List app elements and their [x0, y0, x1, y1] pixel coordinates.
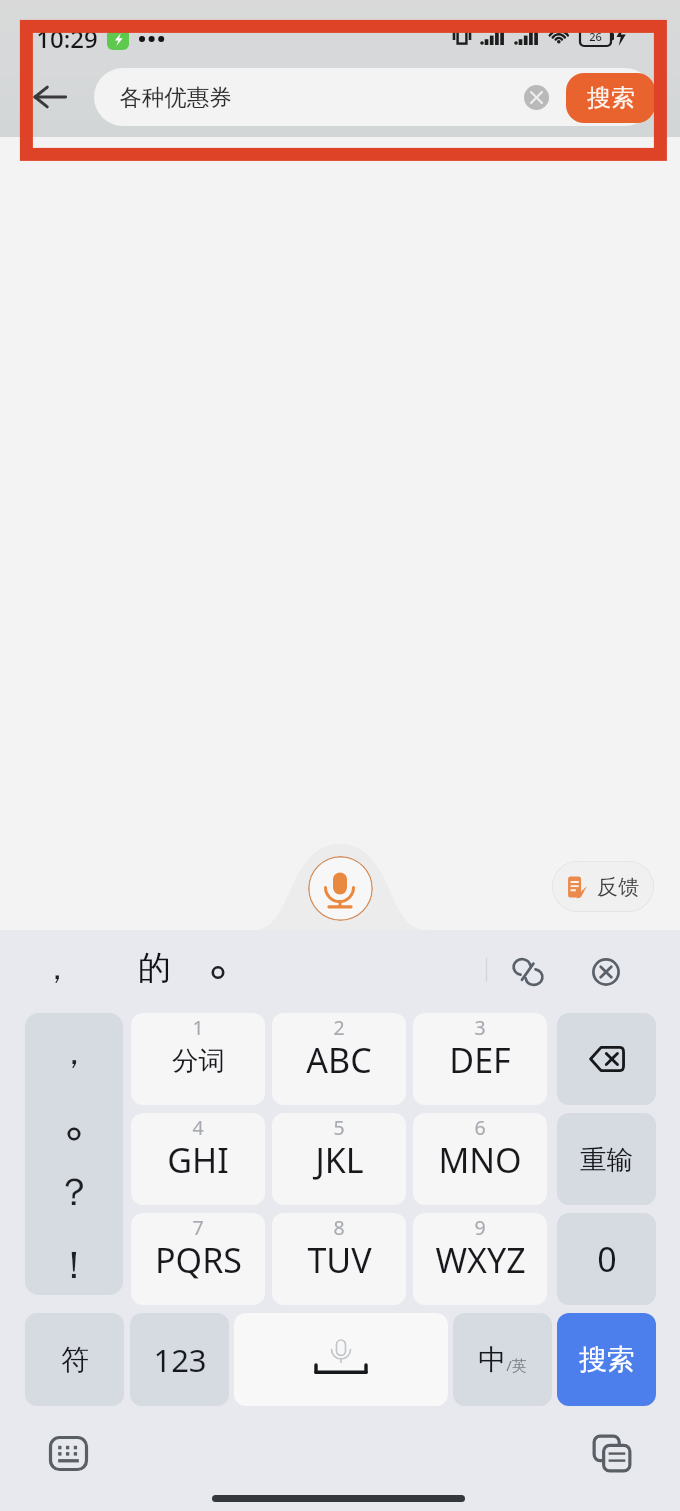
button[interactable]: 8 — [272, 1213, 406, 1305]
staticText: ， — [41, 948, 73, 988]
staticText: 8 — [333, 1214, 345, 1241]
staticText: 搜索 — [587, 83, 635, 113]
staticText: 1 — [192, 1014, 204, 1041]
staticText: 重输 — [580, 1143, 633, 1176]
button[interactable]: 3 — [413, 1013, 547, 1105]
button[interactable] — [186, 930, 250, 1012]
staticText: 的 — [138, 947, 171, 989]
button[interactable]: Back — [14, 68, 86, 126]
button[interactable]: Clear — [524, 85, 549, 110]
staticText: 123 — [153, 1339, 207, 1381]
staticText: 7 — [192, 1214, 204, 1241]
staticText: MNO — [438, 1137, 522, 1183]
button[interactable]: 重输 — [557, 1113, 656, 1205]
staticText: 2 — [333, 1014, 345, 1041]
button[interactable]: ， — [25, 1013, 123, 1295]
button[interactable]: 的 — [110, 930, 198, 1012]
button[interactable]: 符 — [25, 1313, 124, 1406]
staticText: ？ — [55, 1168, 93, 1216]
button[interactable]: 0 — [557, 1213, 656, 1305]
staticText: 反馈 — [597, 874, 639, 900]
staticText: /英 — [506, 1355, 527, 1375]
button[interactable]: 1 — [131, 1013, 265, 1105]
button[interactable]: 7 — [131, 1213, 265, 1305]
staticText: GHI — [167, 1137, 229, 1183]
button[interactable]: Backspace — [557, 1013, 656, 1105]
staticText: 各种优惠券 — [119, 83, 232, 111]
button[interactable]: 6 — [413, 1113, 547, 1205]
button[interactable]: 搜索 — [566, 73, 655, 123]
staticText: 分词 — [172, 1044, 225, 1077]
button[interactable]: ， — [12, 930, 102, 1012]
staticText: DEF — [449, 1037, 511, 1083]
staticText: 4 — [192, 1114, 204, 1141]
staticText: ！ — [55, 1241, 93, 1289]
button[interactable]: Switch keyboard — [40, 1425, 96, 1481]
button[interactable]: Edit text — [502, 946, 554, 998]
button[interactable]: 123 — [130, 1313, 229, 1406]
button[interactable]: 9 — [413, 1213, 547, 1305]
staticText: 搜索 — [579, 1342, 635, 1377]
staticText: 26 — [589, 29, 602, 44]
button[interactable]: 2 — [272, 1013, 406, 1105]
staticText: WXYZ — [435, 1237, 526, 1283]
button[interactable]: Clipboard — [584, 1425, 640, 1481]
button[interactable]: 5 — [272, 1113, 406, 1205]
staticText: JKL — [315, 1137, 364, 1183]
button[interactable]: 中 — [453, 1313, 552, 1406]
button[interactable]: 4 — [131, 1113, 265, 1205]
staticText: 9 — [474, 1214, 486, 1241]
staticText: PQRS — [155, 1237, 242, 1283]
button[interactable]: Close keyboard — [580, 946, 632, 998]
button[interactable]: 反馈 — [552, 861, 654, 912]
button[interactable]: Voice input — [308, 856, 373, 921]
staticText: 10:29 — [36, 22, 98, 55]
staticText: 中 — [478, 1342, 506, 1377]
button[interactable]: Space — [234, 1313, 448, 1406]
button[interactable]: 各种优惠券 — [94, 68, 654, 126]
staticText: 符 — [61, 1342, 89, 1377]
staticText: TUV — [307, 1237, 372, 1283]
button[interactable]: 搜索 — [557, 1313, 656, 1406]
staticText: ， — [57, 1031, 91, 1074]
staticText: 6 — [474, 1114, 486, 1141]
staticText: 5 — [333, 1114, 345, 1141]
staticText: 3 — [474, 1014, 486, 1041]
staticText: ABC — [306, 1037, 372, 1083]
staticText: 0 — [597, 1236, 617, 1282]
